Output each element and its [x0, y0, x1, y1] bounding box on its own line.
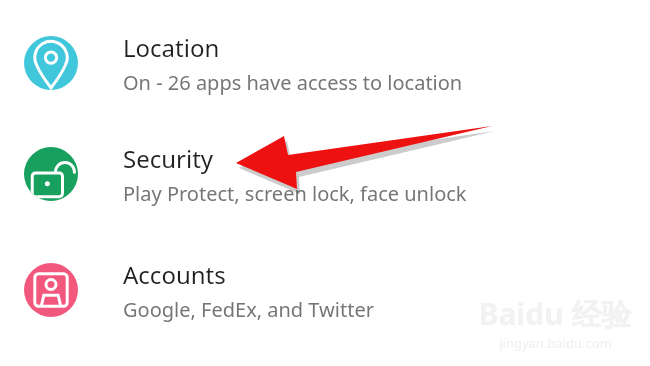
staticText: jingyan.baidu.com	[499, 334, 612, 352]
button[interactable]: Accounts	[0, 232, 650, 348]
staticText: Google, FedEx, and Twitter	[123, 296, 374, 323]
other: Accounts	[24, 263, 78, 317]
staticText: Baidu 经验	[478, 293, 632, 334]
staticText: Play Protect, screen lock, face unlock	[123, 180, 467, 207]
staticText: Location	[123, 31, 220, 64]
button[interactable]: Location	[0, 10, 650, 116]
other: Security	[24, 147, 78, 201]
staticText: On - 26 apps have access to location	[123, 69, 463, 96]
button[interactable]: Security	[0, 116, 650, 232]
other: Location	[24, 36, 78, 90]
staticText: Security	[123, 142, 214, 175]
staticText: Accounts	[123, 258, 226, 291]
